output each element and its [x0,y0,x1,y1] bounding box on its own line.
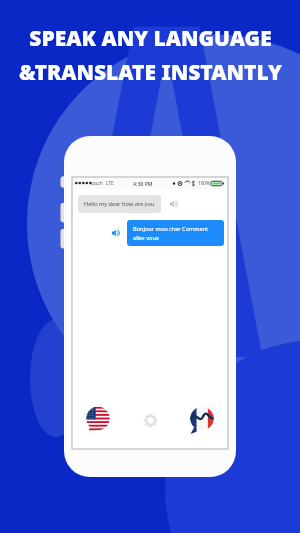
button[interactable]: Bonjour mon cher Comment allez vous [127,220,224,246]
staticText: touch [90,180,103,186]
button[interactable]: Play audio [168,198,180,210]
button[interactable]: Speak French [187,405,217,435]
staticText: SPEAK ANY LANGUAGE [29,24,272,53]
staticText: 100% [198,180,210,186]
staticText: Bonjour mon cher Comment allez vous [133,225,218,241]
button[interactable]: Settings [143,413,158,428]
button[interactable]: Play translation [110,227,122,239]
staticText: 4:38 PM [133,180,153,187]
button[interactable]: Speak English [83,405,113,435]
staticText: &TRANSLATE INSTANTLY [19,58,282,87]
staticText: LTE [106,180,114,186]
staticText: Hello my dear how are you [84,200,155,208]
button[interactable]: Hello my dear how are you [78,195,161,213]
